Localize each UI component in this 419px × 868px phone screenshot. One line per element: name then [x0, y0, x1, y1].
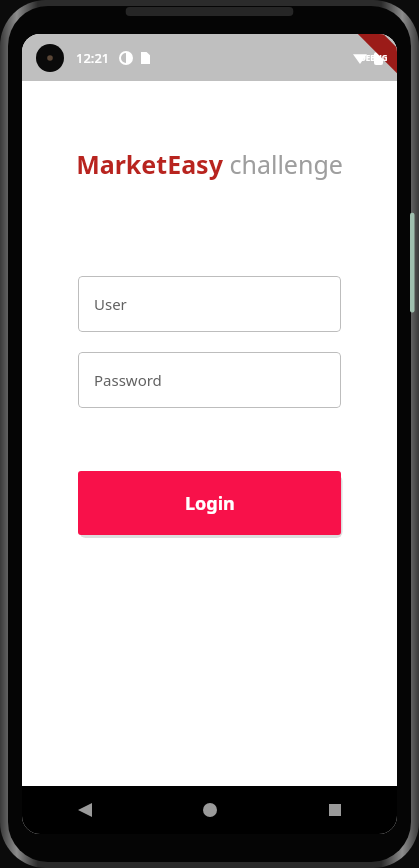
button[interactable]: Back: [22, 786, 147, 834]
staticText: User: [94, 294, 127, 314]
button[interactable]: User: [78, 276, 341, 332]
staticText: Login: [185, 491, 235, 516]
button[interactable]: Recent apps: [272, 786, 397, 834]
staticText: DEBUG: [360, 52, 388, 63]
button[interactable]: Login: [78, 471, 341, 535]
staticText: Password: [94, 370, 162, 390]
staticText: MarketEasy challenge: [76, 147, 343, 181]
staticText: 12:21: [76, 49, 110, 67]
button[interactable]: Password: [78, 352, 341, 408]
button[interactable]: Home: [147, 786, 272, 834]
